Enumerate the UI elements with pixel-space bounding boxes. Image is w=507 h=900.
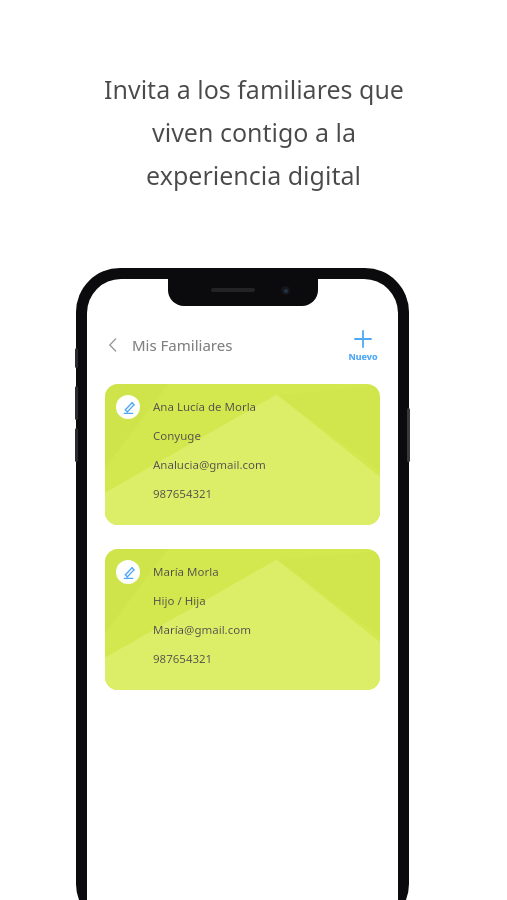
button[interactable]: Editar	[116, 395, 140, 419]
staticText: Mis Familiares	[132, 335, 233, 355]
staticText: Analucia@gmail.com	[153, 457, 266, 473]
staticText: María Morla	[153, 564, 219, 580]
staticText: 987654321	[153, 651, 213, 667]
staticText: Ana Lucía de Morla	[153, 399, 257, 415]
staticText: viven contigo a la	[152, 115, 356, 149]
staticText: Conyuge	[153, 428, 201, 444]
button[interactable]: Editar	[116, 560, 140, 584]
button[interactable]: Editar	[105, 384, 380, 525]
button[interactable]: Back	[101, 331, 237, 359]
staticText: Hijo / Hija	[153, 593, 206, 609]
staticText: Nuevo	[348, 350, 378, 362]
staticText: 987654321	[153, 486, 213, 502]
staticText: experiencia digital	[146, 158, 361, 192]
button[interactable]: Editar	[105, 549, 380, 690]
staticText: Invita a los familiares que	[104, 72, 404, 106]
staticText: María@gmail.com	[153, 622, 251, 638]
other: Back	[105, 337, 121, 353]
other: Nuevo	[353, 329, 373, 349]
button[interactable]: Nuevo	[342, 327, 384, 364]
